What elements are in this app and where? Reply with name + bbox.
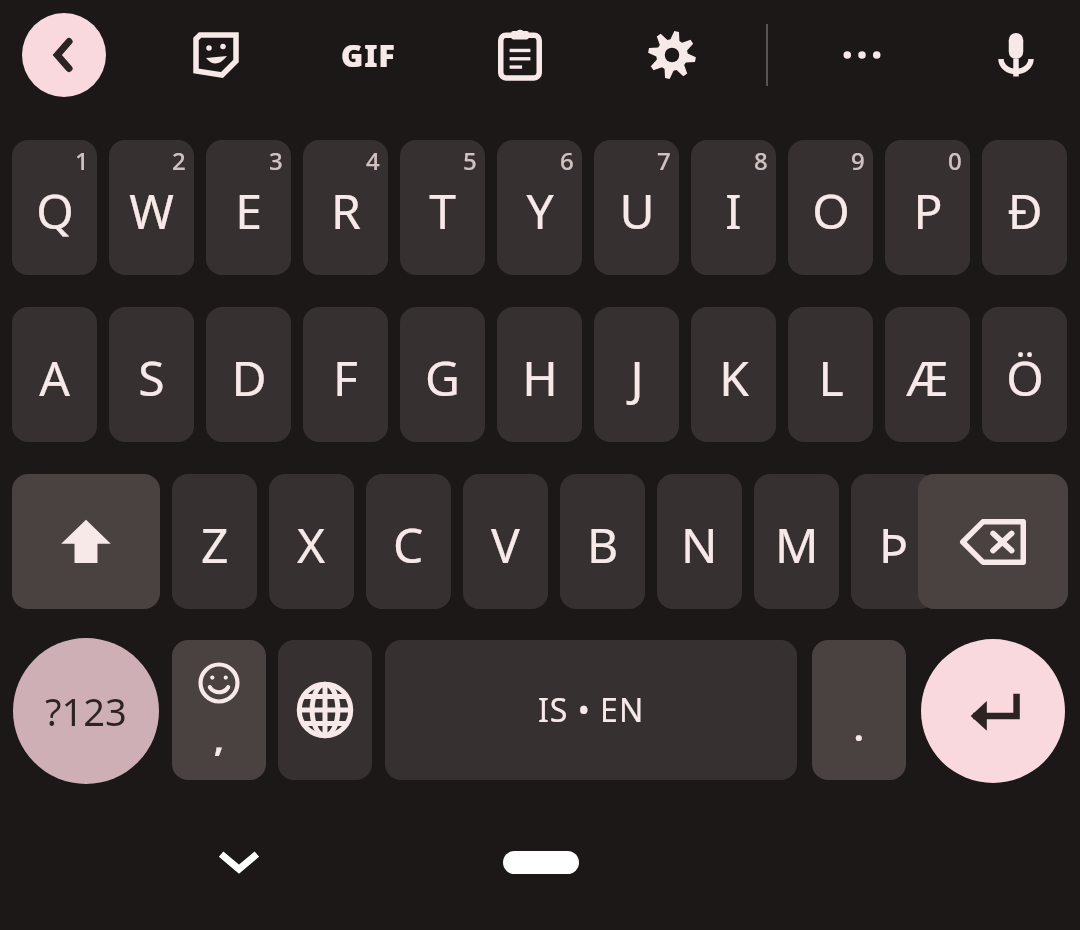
- staticText: Z: [201, 512, 229, 577]
- button[interactable]: J: [594, 307, 679, 442]
- button[interactable]: H: [497, 307, 582, 442]
- staticText: K: [719, 345, 749, 410]
- button[interactable]: U: [594, 140, 679, 275]
- staticText: Y: [526, 178, 554, 243]
- button[interactable]: Voice input: [974, 13, 1058, 97]
- staticText: P: [913, 178, 943, 243]
- staticText: ?123: [45, 685, 127, 737]
- button[interactable]: M: [754, 474, 839, 609]
- button[interactable]: C: [366, 474, 451, 609]
- button[interactable]: Enter: [921, 639, 1065, 783]
- button[interactable]: Ð: [982, 140, 1067, 275]
- staticText: M: [775, 512, 819, 577]
- staticText: Þ: [879, 512, 909, 577]
- staticText: 2: [172, 144, 186, 177]
- staticText: Q: [36, 178, 74, 243]
- staticText: I: [725, 178, 742, 243]
- staticText: GIF: [341, 35, 396, 76]
- button[interactable]: More options: [820, 13, 904, 97]
- staticText: D: [231, 345, 267, 410]
- button[interactable]: L: [788, 307, 873, 442]
- staticText: Ð: [1007, 178, 1043, 243]
- button[interactable]: Emoji: [172, 640, 266, 780]
- staticText: 9: [851, 144, 865, 177]
- staticText: 3: [269, 144, 283, 177]
- button[interactable]: S: [109, 307, 194, 442]
- staticText: 4: [366, 144, 380, 177]
- button[interactable]: F: [303, 307, 388, 442]
- staticText: 6: [560, 144, 574, 177]
- button[interactable]: Þ: [851, 474, 936, 609]
- button[interactable]: A: [12, 307, 97, 442]
- button[interactable]: N: [657, 474, 742, 609]
- button[interactable]: R: [303, 140, 388, 275]
- staticText: A: [39, 345, 70, 410]
- button[interactable]: Q: [12, 140, 97, 275]
- button[interactable]: Hide keyboard: [199, 822, 279, 902]
- button[interactable]: Shift: [12, 474, 160, 609]
- button[interactable]: Settings: [630, 13, 714, 97]
- button[interactable]: Y: [497, 140, 582, 275]
- staticText: 8: [754, 144, 768, 177]
- button[interactable]: ?123: [13, 638, 159, 784]
- button[interactable]: P: [885, 140, 970, 275]
- button[interactable]: G: [400, 307, 485, 442]
- button[interactable]: Stickers: [174, 13, 258, 97]
- staticText: 0: [948, 144, 962, 177]
- staticText: F: [333, 345, 358, 410]
- button[interactable]: V: [463, 474, 548, 609]
- button[interactable]: Æ: [885, 307, 970, 442]
- staticText: T: [429, 178, 456, 243]
- button[interactable]: Back: [22, 13, 106, 97]
- staticText: E: [235, 178, 262, 243]
- staticText: 5: [463, 144, 477, 177]
- staticText: W: [129, 178, 174, 243]
- button[interactable]: Ö: [982, 307, 1067, 442]
- staticText: L: [818, 345, 844, 410]
- button[interactable]: K: [691, 307, 776, 442]
- button[interactable]: I: [691, 140, 776, 275]
- staticText: N: [681, 512, 718, 577]
- staticText: V: [491, 512, 520, 577]
- staticText: C: [393, 512, 424, 577]
- staticText: G: [425, 345, 460, 410]
- staticText: Ö: [1006, 345, 1044, 410]
- button[interactable]: GIF: [326, 13, 410, 97]
- staticText: .: [854, 705, 864, 751]
- button[interactable]: Backspace: [918, 474, 1068, 609]
- button[interactable]: Clipboard: [478, 13, 562, 97]
- staticText: S: [138, 345, 165, 410]
- staticText: U: [619, 178, 655, 243]
- button[interactable]: D: [206, 307, 291, 442]
- staticText: IS • EN: [538, 688, 645, 732]
- button[interactable]: W: [109, 140, 194, 275]
- staticText: ,: [214, 716, 224, 762]
- button[interactable]: T: [400, 140, 485, 275]
- staticText: Æ: [906, 345, 949, 410]
- button[interactable]: O: [788, 140, 873, 275]
- staticText: J: [630, 345, 644, 410]
- staticText: O: [812, 178, 850, 243]
- button[interactable]: E: [206, 140, 291, 275]
- button[interactable]: Change keyboard language: [278, 640, 372, 780]
- staticText: B: [587, 512, 619, 577]
- staticText: H: [522, 345, 558, 410]
- button[interactable]: X: [269, 474, 354, 609]
- button[interactable]: .: [812, 640, 906, 780]
- button[interactable]: B: [560, 474, 645, 609]
- staticText: 1: [75, 144, 89, 177]
- staticText: 7: [657, 144, 671, 177]
- button[interactable]: IS • EN: [385, 640, 797, 780]
- staticText: R: [331, 178, 361, 243]
- staticText: X: [297, 512, 326, 577]
- button[interactable]: Z: [172, 474, 257, 609]
